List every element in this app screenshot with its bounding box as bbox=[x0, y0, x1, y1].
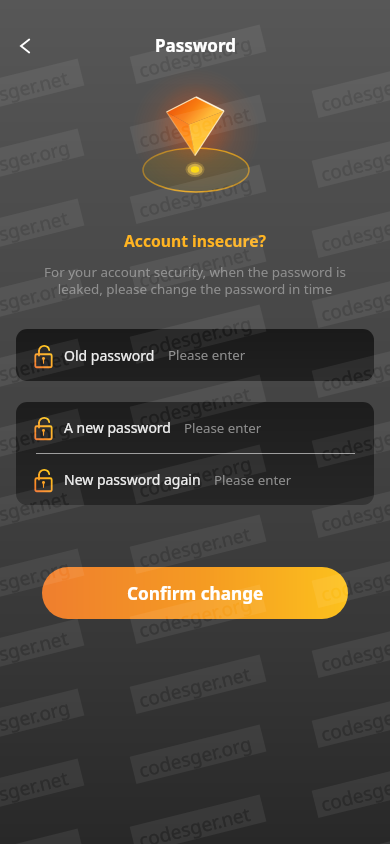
button[interactable]: New password again bbox=[16, 454, 374, 505]
staticText: Old password bbox=[64, 346, 155, 365]
staticText: Confirm change bbox=[127, 582, 264, 605]
button[interactable]: Old password bbox=[16, 329, 374, 381]
button[interactable]: Back bbox=[2, 23, 48, 69]
staticText: Password bbox=[155, 34, 236, 57]
staticText: Account insecure? bbox=[0, 230, 390, 251]
staticText: New password again bbox=[64, 470, 201, 489]
staticText: Please enter bbox=[168, 346, 246, 364]
button[interactable]: A new password bbox=[16, 402, 374, 453]
staticText: For your account security, when the pass… bbox=[0, 263, 390, 298]
button[interactable]: Confirm change bbox=[42, 567, 348, 619]
staticText: A new password bbox=[64, 418, 171, 437]
staticText: Please enter bbox=[184, 419, 262, 437]
staticText: Please enter bbox=[214, 471, 292, 489]
